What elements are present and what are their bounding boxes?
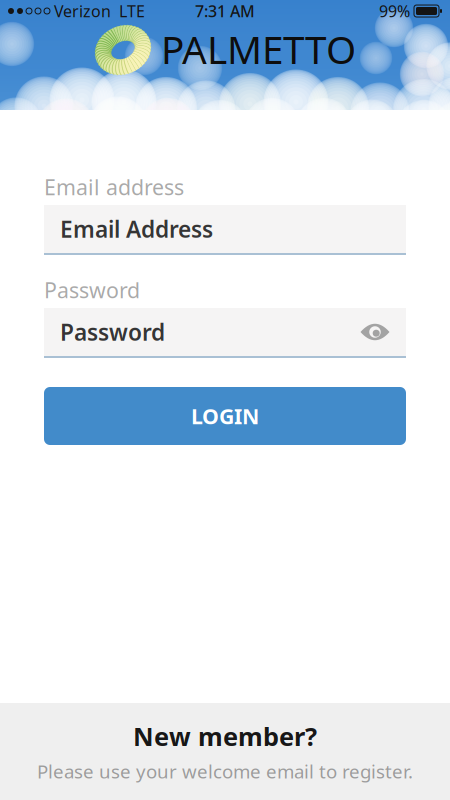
- staticText: New member?: [133, 719, 317, 753]
- button[interactable]: Password: [44, 308, 406, 358]
- staticText: Please use your welcome email to registe…: [37, 759, 413, 784]
- staticText: Password: [60, 317, 165, 347]
- staticText: LTE: [111, 0, 145, 22]
- button[interactable]: Email Address: [44, 205, 406, 255]
- staticText: PALMETTO: [161, 23, 356, 75]
- button[interactable]: Show password: [360, 323, 390, 341]
- staticText: Password: [44, 276, 140, 304]
- staticText: Email Address: [60, 214, 213, 244]
- staticText: Verizon: [50, 0, 111, 22]
- staticText: 7:31 AM: [195, 0, 255, 22]
- button[interactable]: LOGIN: [44, 387, 406, 445]
- staticText: 99%: [379, 0, 410, 22]
- staticText: Email address: [44, 173, 184, 201]
- staticText: LOGIN: [191, 402, 259, 430]
